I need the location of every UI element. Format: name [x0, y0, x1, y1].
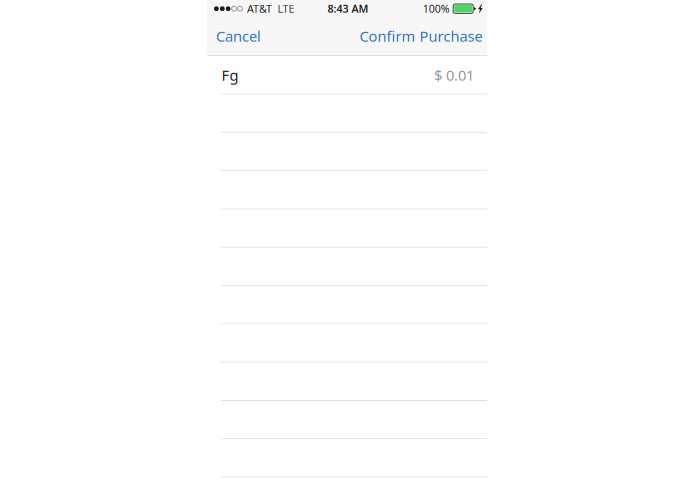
staticText: 100%: [423, 2, 450, 16]
staticText: 8:43 AM: [327, 2, 368, 16]
staticText: $ 0.01: [434, 65, 474, 85]
staticText: Confirm Purchase: [359, 26, 482, 46]
button[interactable]: Confirm Purchase: [351, 17, 487, 54]
staticText: LTE: [277, 2, 294, 16]
button[interactable]: Fg: [207, 56, 487, 95]
button[interactable]: Cancel: [207, 17, 270, 54]
staticText: Cancel: [216, 26, 261, 46]
staticText: AT&T: [247, 2, 272, 16]
staticText: Fg: [221, 65, 238, 85]
